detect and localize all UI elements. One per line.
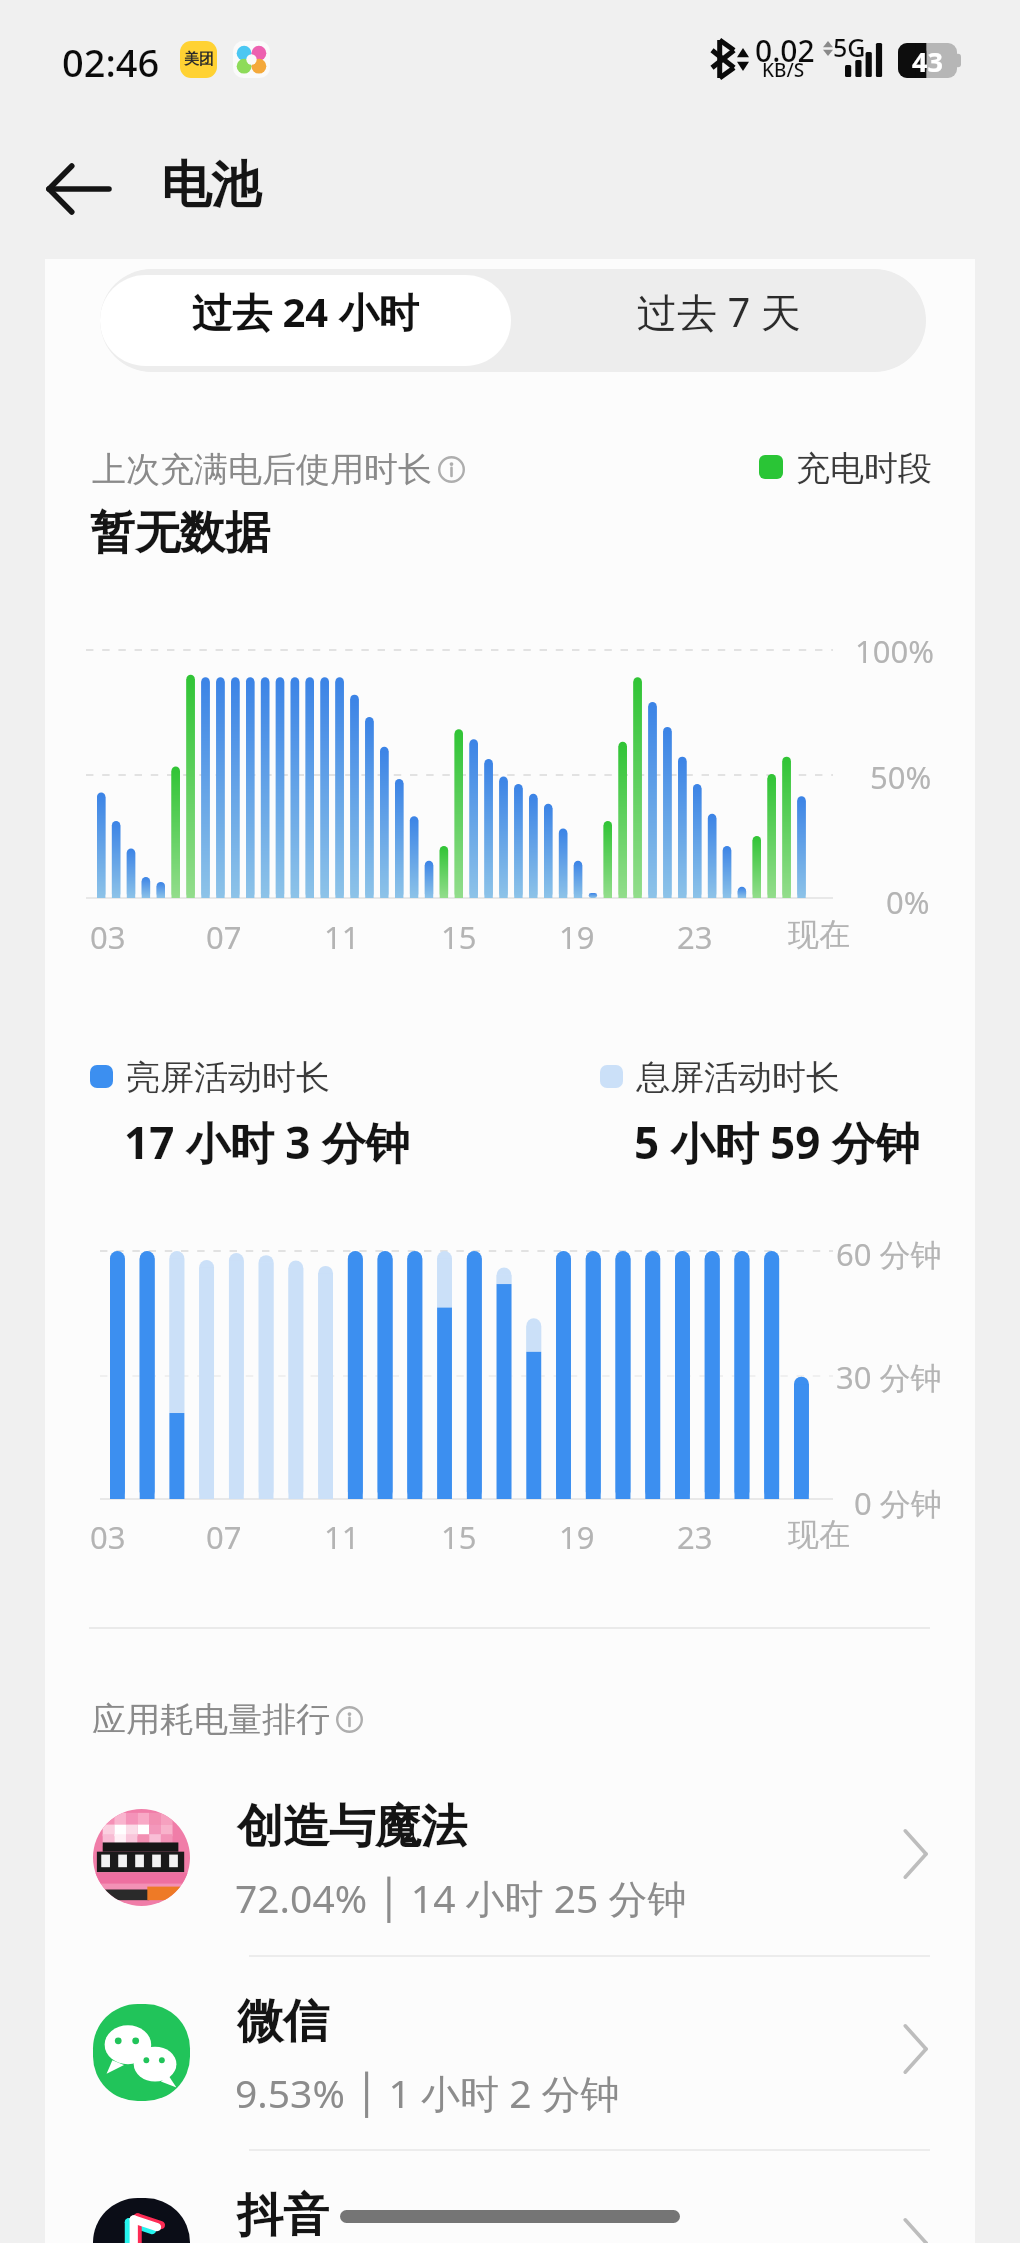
button[interactable]: 过去 7 天: [511, 269, 926, 372]
staticText: 电池: [161, 154, 261, 217]
staticText: 过去 7 天: [637, 284, 801, 339]
button[interactable]: 微信: [45, 1964, 975, 2144]
button[interactable]: 创造与魔法: [45, 1769, 975, 1949]
staticText: 15: [441, 916, 477, 958]
staticText: 5 小时 59 分钟: [634, 1112, 920, 1172]
staticText: 创造与魔法: [237, 1798, 467, 1856]
staticText: 72.04% │ 14 小时 25 分钟: [235, 1871, 687, 1924]
staticText: 美团: [184, 50, 214, 69]
staticText: 0 分钟: [854, 1482, 942, 1524]
button[interactable]: 应用耗电量排行: [92, 1698, 363, 1741]
staticText: 暂无数据: [90, 505, 270, 562]
button[interactable]: 上次充满电后使用时长: [92, 448, 465, 491]
staticText: 23: [677, 1516, 713, 1558]
staticText: 15: [441, 1516, 477, 1558]
staticText: 03: [90, 1516, 126, 1558]
staticText: 23: [677, 916, 713, 958]
staticText: 03: [90, 916, 126, 958]
staticText: 0.02: [755, 30, 815, 71]
staticText: 9.53% │ 1 小时 2 分钟: [235, 2066, 620, 2119]
other: More info: [438, 456, 465, 483]
staticText: 100%: [855, 630, 934, 672]
staticText: 50%: [870, 756, 932, 798]
staticText: 抖音: [237, 2187, 329, 2243]
button[interactable]: 抖音: [45, 2158, 975, 2243]
staticText: 11: [324, 916, 360, 958]
staticText: 上次充满电后使用时长: [92, 448, 432, 491]
staticText: 30 分钟: [836, 1356, 942, 1398]
staticText: 19: [559, 916, 595, 958]
staticText: 5G: [833, 30, 866, 64]
other: About app power ranking: [336, 1706, 363, 1733]
staticText: 07: [206, 916, 242, 958]
staticText: 02:46: [62, 36, 160, 88]
staticText: 现在: [788, 915, 850, 954]
staticText: 07: [206, 1516, 242, 1558]
button[interactable]: 过去 24 小时: [100, 275, 511, 366]
staticText: 微信: [237, 1993, 329, 2051]
staticText: 亮屏活动时长: [126, 1056, 330, 1099]
staticText: 60 分钟: [836, 1233, 942, 1275]
staticText: 43: [912, 43, 943, 78]
staticText: 息屏活动时长: [636, 1056, 840, 1099]
staticText: 19: [559, 1516, 595, 1558]
staticText: 0%: [886, 881, 930, 923]
staticText: 应用耗电量排行: [92, 1698, 330, 1741]
staticText: 17 小时 3 分钟: [124, 1112, 410, 1172]
staticText: 充电时段: [796, 447, 932, 490]
staticText: 过去 24 小时: [192, 284, 419, 339]
button[interactable]: Back: [22, 133, 134, 245]
staticText: 11: [324, 1516, 360, 1558]
staticText: 现在: [788, 1515, 850, 1554]
staticText: KB/S: [762, 57, 805, 83]
